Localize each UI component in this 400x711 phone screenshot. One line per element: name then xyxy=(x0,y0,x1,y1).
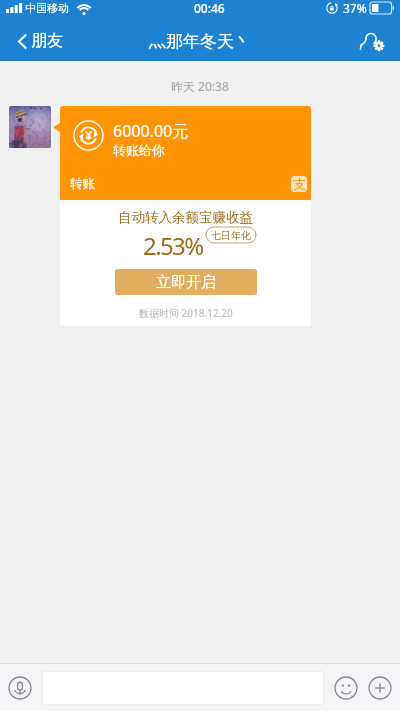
button[interactable]: 6000.00元 xyxy=(60,106,311,326)
staticText: 支 xyxy=(293,176,306,192)
staticText: 37% xyxy=(343,0,367,16)
staticText: 自动转入余额宝赚收益 xyxy=(118,209,253,226)
button[interactable]: Emoji xyxy=(334,676,358,700)
button[interactable]: Voice message xyxy=(8,676,32,700)
staticText: 七日年化 xyxy=(211,229,251,242)
staticText: 6000.00元 xyxy=(113,120,189,142)
button[interactable]: Message input xyxy=(42,671,324,705)
staticText: 转账给你 xyxy=(113,142,165,158)
staticText: 立即开启 xyxy=(156,273,216,292)
staticText: 灬那年冬天丶 xyxy=(149,31,251,52)
staticText: 中国移动 xyxy=(25,1,69,15)
staticText: 2.53% xyxy=(143,229,203,262)
button[interactable]: Contact settings xyxy=(351,25,400,57)
staticText: 转账 xyxy=(70,176,95,192)
staticText: 朋友 xyxy=(31,31,63,51)
staticText: 昨天 20:38 xyxy=(171,78,229,94)
button[interactable]: More xyxy=(368,676,392,700)
staticText: 00:46 xyxy=(194,0,225,16)
button[interactable]: Avatar xyxy=(9,106,51,148)
button[interactable]: 立即开启 xyxy=(115,269,257,295)
button[interactable]: 朋友 xyxy=(0,25,73,57)
staticText: 数据时间 2018.12.20 xyxy=(139,306,233,320)
